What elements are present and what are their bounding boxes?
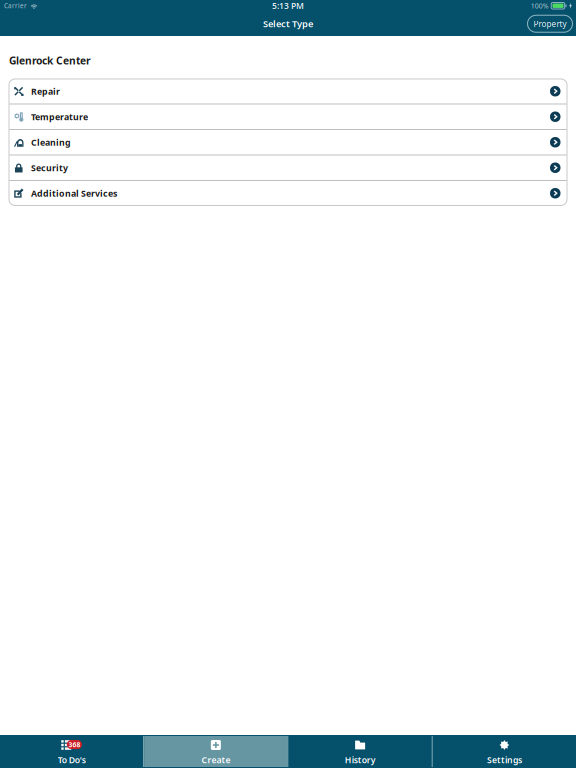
staticText: Cleaning xyxy=(31,136,71,148)
staticText: Security xyxy=(31,162,68,174)
button[interactable]: Security xyxy=(9,155,567,180)
button[interactable]: Additional Services xyxy=(9,181,567,205)
staticText: Property xyxy=(533,18,566,29)
button[interactable]: History xyxy=(288,736,432,767)
staticText: Create xyxy=(201,754,230,766)
staticText: Carrier xyxy=(4,1,27,10)
button[interactable]: Create xyxy=(144,736,287,767)
staticText: To Do's xyxy=(58,754,86,766)
staticText: Select Type xyxy=(263,17,313,30)
staticText: 5:13 PM xyxy=(272,0,304,11)
staticText: Additional Services xyxy=(31,187,117,199)
staticText: Temperature xyxy=(31,111,88,123)
button[interactable]: Repair xyxy=(9,79,567,103)
button[interactable]: Cleaning xyxy=(9,130,567,154)
staticText: 368 xyxy=(68,740,80,749)
staticText: Glenrock Center xyxy=(9,53,91,67)
button[interactable]: 368 xyxy=(0,736,143,767)
button[interactable]: Settings xyxy=(433,736,576,767)
button[interactable]: Temperature xyxy=(9,104,567,129)
staticText: 100% xyxy=(531,1,549,10)
staticText: Repair xyxy=(31,85,60,97)
button[interactable]: Property xyxy=(527,15,572,32)
staticText: History xyxy=(345,754,376,766)
staticText: Settings xyxy=(487,754,522,766)
